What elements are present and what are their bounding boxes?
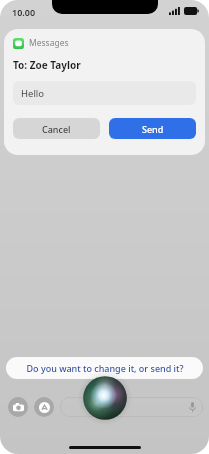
staticText: To: Zoe Taylor <box>13 58 81 72</box>
staticText: Hello <box>21 87 45 100</box>
staticText: Do you want to change it, or send it? <box>26 362 184 374</box>
button[interactable]: Siri <box>79 374 131 422</box>
staticText: Send <box>142 123 164 135</box>
staticText: 10.00 <box>12 6 36 18</box>
button[interactable]: Camera <box>8 397 28 417</box>
button[interactable] <box>60 397 203 417</box>
staticText: Messages <box>29 37 69 49</box>
button[interactable]: Send <box>109 118 196 139</box>
button[interactable]: Apps <box>34 397 54 417</box>
button[interactable]: Hello <box>13 81 196 105</box>
button[interactable]: Cancel <box>13 118 100 139</box>
button[interactable]: Do you want to change it, or send it? <box>6 357 203 379</box>
staticText: Cancel <box>42 123 71 135</box>
